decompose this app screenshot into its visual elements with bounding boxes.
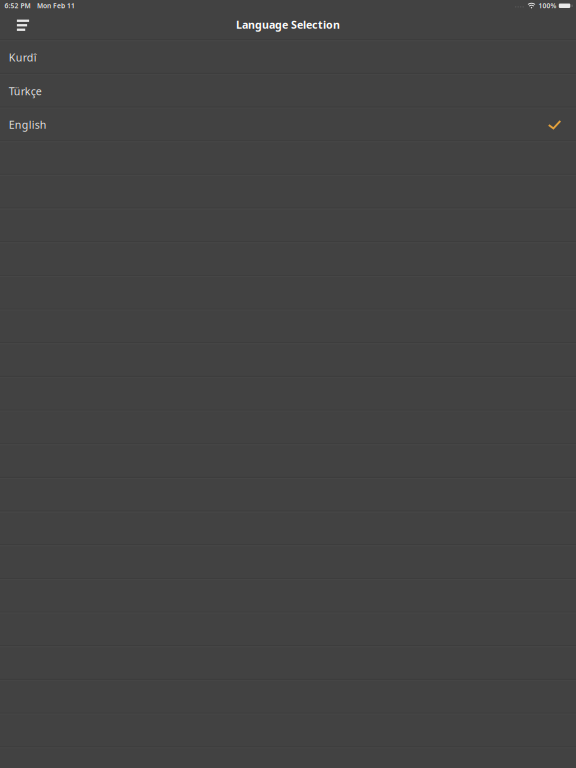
staticText: Mon Feb 11 [37, 1, 75, 10]
staticText: 100% [539, 1, 557, 10]
staticText: Language Selection [236, 17, 340, 32]
staticText: 6:52 PM [4, 1, 30, 10]
staticText: Kurdî [9, 50, 37, 64]
button[interactable]: Kurdî [0, 41, 576, 73]
button[interactable]: Menu [12, 15, 37, 39]
staticText: Türkçe [9, 84, 42, 98]
button[interactable]: Türkçe [0, 75, 576, 107]
button[interactable]: English [0, 108, 576, 141]
staticText: English [9, 118, 47, 132]
